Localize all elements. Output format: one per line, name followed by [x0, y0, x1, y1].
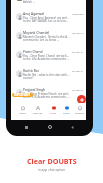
button[interactable]: Batches	[31, 103, 44, 120]
button[interactable]: Piwin Chand	[11, 44, 86, 63]
staticText: community. Let us know ...	[23, 38, 60, 41]
button[interactable]: Rachit Rai	[11, 63, 86, 82]
staticText: Anuj Agarwal	[23, 11, 44, 16]
button[interactable]: Prajjwal Singh	[11, 82, 86, 101]
staticText: 20 Sep 21	[72, 69, 84, 72]
staticText: Class	[50, 111, 57, 114]
staticText: to the Life Academy community. Let us	[23, 57, 70, 60]
staticText: Mayank Chandel - Shetal is the Academy	[23, 35, 70, 38]
staticText: You - Dear Anuj Agarwal, we welcome you	[23, 16, 70, 19]
button[interactable]: Compose	[77, 95, 86, 104]
staticText: to the SAF SAGAR. Lot us to know...	[23, 19, 70, 22]
staticText: Prajjwal Singh	[23, 87, 46, 92]
staticText: Mayank Chandel	[23, 30, 50, 35]
button[interactable]: Tejaswini Bhalerao	[11, 0, 86, 6]
staticText: course?	[23, 76, 34, 79]
staticText: Batches	[33, 111, 43, 114]
staticText: IMPORTANT	[14, 93, 31, 97]
staticText: Ashish ...	[23, 0, 36, 3]
staticText: Rachit Rai	[23, 68, 39, 73]
staticText: in app chat option	[38, 168, 66, 172]
button[interactable]: Reports	[73, 103, 86, 120]
button[interactable]: Chats	[60, 103, 73, 120]
staticText: Piwin Chand	[23, 49, 43, 54]
button[interactable]: Class	[47, 103, 60, 120]
staticText: You - Dear Piwin Chand, we welcome you	[23, 54, 70, 57]
staticText: Yesterday	[72, 12, 84, 15]
staticText: Clear DOUBTS	[27, 156, 77, 166]
staticText: Reports	[75, 111, 85, 114]
staticText: 20 May 21	[72, 31, 84, 34]
staticText: 20 Sep 21	[72, 50, 84, 53]
staticText: You - Dear Prajjwal Singh, we welcome yo…	[23, 92, 70, 95]
staticText: Home	[19, 111, 27, 114]
button[interactable]: Anuj Agarwal	[11, 6, 86, 25]
button[interactable]: Home	[16, 103, 29, 120]
staticText: 20 Sep 21	[72, 88, 84, 91]
button[interactable]: IMPORTANT	[12, 93, 33, 97]
staticText: Chats	[63, 111, 70, 114]
button[interactable]: Mayank Chandel	[11, 25, 86, 44]
staticText: Rachit Rai - what is the start with foun…	[23, 73, 70, 76]
staticText: to the STK Academy community. Let us kno…	[23, 95, 70, 98]
